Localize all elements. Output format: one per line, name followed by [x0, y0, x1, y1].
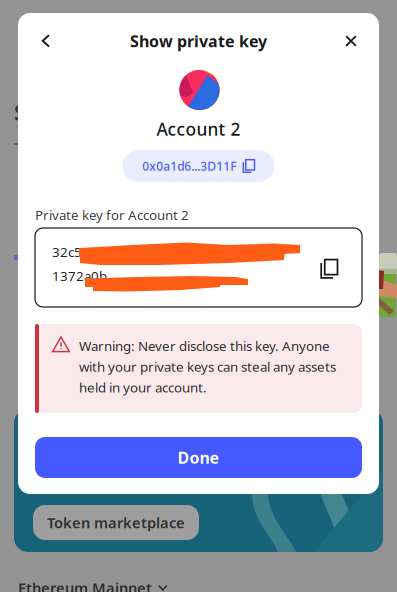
staticText: Account 2: [156, 117, 240, 140]
button[interactable]: Done: [35, 437, 362, 478]
staticText: Ethereum Mainnet: [18, 578, 152, 592]
staticText: Warning: Never disclose this key. Anyone…: [79, 337, 336, 396]
staticText: Done: [177, 447, 219, 468]
button[interactable]: Back: [29, 24, 63, 58]
staticText: Show private key: [130, 30, 267, 52]
staticText: Token marketplace: [47, 513, 185, 532]
staticText: +$0.00: [14, 119, 47, 133]
staticText: 32c5ce: [52, 243, 96, 261]
staticText: 0x0a1d6...3D11F: [142, 158, 236, 174]
staticText: Private key for Account 2: [35, 206, 189, 224]
button[interactable]: 0x0a1d6...3D11F: [122, 150, 274, 182]
button[interactable]: Close: [334, 24, 368, 58]
staticText: 1372a0b: [52, 267, 107, 285]
staticText: $0.00: [14, 95, 77, 129]
